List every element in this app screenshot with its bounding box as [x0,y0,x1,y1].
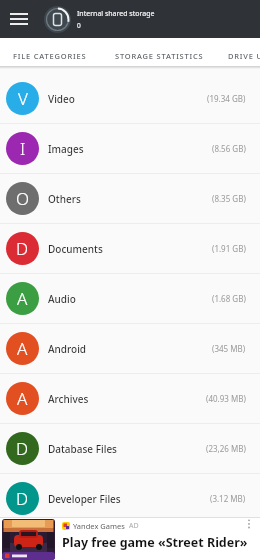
staticText: A [17,387,28,410]
staticText: Internal shared storage [77,9,155,19]
staticText: (3.12 MB) [210,493,246,504]
staticText: 0 [77,21,81,30]
staticText: Images [48,142,84,156]
staticText: Yandex Games [73,521,125,531]
button[interactable]: Yandex Games [0,518,260,560]
staticText: (8.56 GB) [212,143,246,154]
staticText: A [17,337,28,360]
button[interactable]: D [0,224,260,273]
staticText: I [20,137,26,160]
staticText: Archives [48,392,89,406]
button[interactable] [243,518,255,530]
button[interactable]: I [0,124,260,173]
button[interactable]: STORAGE STATISTICS [115,49,204,63]
staticText: STORAGE STATISTICS [115,51,204,61]
button[interactable]: A [0,324,260,373]
button[interactable]: DRIVE USAGES [228,49,260,63]
staticText: A [17,287,28,310]
staticText: Documents [48,242,103,256]
button[interactable]: O [0,174,260,223]
staticText: Developer Files [48,492,121,506]
staticText: (40.93 MB) [206,393,246,404]
button[interactable]: A [0,274,260,323]
staticText: D [16,487,29,510]
staticText: (8.35 GB) [212,193,246,204]
staticText: (345 MB) [212,343,246,354]
staticText: V [18,87,28,110]
staticText: (1.91 GB) [212,243,246,254]
staticText: Android [48,342,87,356]
button[interactable] [0,0,38,38]
button[interactable]: D [0,474,260,523]
staticText: (23,26 MB) [206,443,246,454]
staticText: Play free game «Street Rider» [62,534,248,551]
staticText: Audio [48,292,76,306]
button[interactable]: FILE CATEGORIES [13,49,87,63]
staticText: (19.34 GB) [207,93,246,104]
button[interactable]: A [0,374,260,423]
staticText: FILE CATEGORIES [13,51,87,61]
button[interactable]: V [0,74,260,123]
button[interactable]: D [0,424,260,473]
staticText: O [16,187,30,210]
staticText: AD [129,521,139,531]
staticText: Others [48,192,81,206]
staticText: DRIVE USAGES [228,51,260,61]
staticText: (1.68 GB) [212,293,246,304]
staticText: Database Files [48,442,117,456]
staticText: D [16,237,29,260]
staticText: D [16,437,29,460]
staticText: Video [48,92,75,106]
